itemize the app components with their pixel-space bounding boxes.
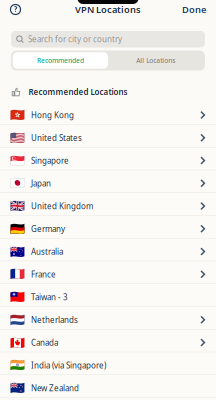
staticText: 🇯🇵 bbox=[10, 176, 25, 190]
staticText: Recommended bbox=[37, 56, 84, 65]
staticText: 🇨🇦 bbox=[10, 336, 25, 349]
button[interactable]: 🇫🇷 bbox=[0, 261, 216, 284]
staticText: Recommended Locations bbox=[28, 87, 127, 97]
button[interactable]: Recommended bbox=[13, 52, 108, 69]
staticText: Taiwan - 3 bbox=[31, 292, 68, 302]
button[interactable]: Help bbox=[6, 2, 23, 17]
button[interactable]: 🇳🇿 bbox=[0, 375, 216, 398]
staticText: VPN Locations bbox=[75, 3, 141, 16]
button[interactable]: 🇭🇰 bbox=[0, 102, 216, 125]
staticText: Done bbox=[182, 3, 206, 16]
staticText: United Kingdom bbox=[31, 201, 93, 211]
staticText: 🇺🇸 bbox=[10, 131, 25, 145]
staticText: Singapore bbox=[31, 155, 69, 166]
button[interactable]: 🇸🇬 bbox=[0, 147, 216, 170]
button[interactable]: Done bbox=[178, 1, 210, 18]
button[interactable]: 🇩🇪 bbox=[0, 216, 216, 239]
button[interactable]: 🇯🇵 bbox=[0, 170, 216, 193]
staticText: 🇳🇱 bbox=[10, 313, 25, 327]
staticText: 🇳🇿 bbox=[10, 381, 25, 395]
staticText: Germany bbox=[31, 224, 65, 234]
staticText: 🇹🇼 bbox=[10, 290, 25, 304]
staticText: Netherlands bbox=[31, 315, 78, 325]
staticText: 🇸🇬 bbox=[10, 154, 25, 167]
staticText: Hong Kong bbox=[31, 110, 74, 120]
staticText: 🇩🇪 bbox=[10, 222, 25, 236]
staticText: Canada bbox=[31, 337, 58, 348]
staticText: Search for city or country bbox=[28, 34, 122, 44]
staticText: 🇬🇧 bbox=[10, 199, 25, 213]
staticText: 🇦🇺 bbox=[10, 245, 25, 258]
staticText: Australia bbox=[31, 246, 63, 257]
button[interactable]: 🇬🇧 bbox=[0, 193, 216, 216]
staticText: 🇫🇷 bbox=[10, 267, 25, 281]
button[interactable]: 🇳🇱 bbox=[0, 307, 216, 330]
button[interactable]: 🇹🇼 bbox=[0, 284, 216, 307]
button[interactable]: 🇺🇸 bbox=[0, 125, 216, 148]
staticText: India (via Singapore) bbox=[31, 360, 106, 371]
button[interactable]: 🇨🇦 bbox=[0, 329, 216, 352]
staticText: New Zealand bbox=[31, 383, 79, 393]
staticText: United States bbox=[31, 133, 82, 143]
button[interactable]: All Locations bbox=[108, 52, 203, 69]
button[interactable]: 🇦🇺 bbox=[0, 238, 216, 261]
staticText: All Locations bbox=[136, 56, 175, 65]
staticText: 🇭🇰 bbox=[10, 108, 25, 122]
staticText: 🇮🇳 bbox=[10, 358, 25, 372]
staticText: Japan bbox=[31, 178, 51, 189]
staticText: France bbox=[31, 269, 56, 280]
button[interactable]: 🇮🇳 bbox=[0, 352, 216, 375]
